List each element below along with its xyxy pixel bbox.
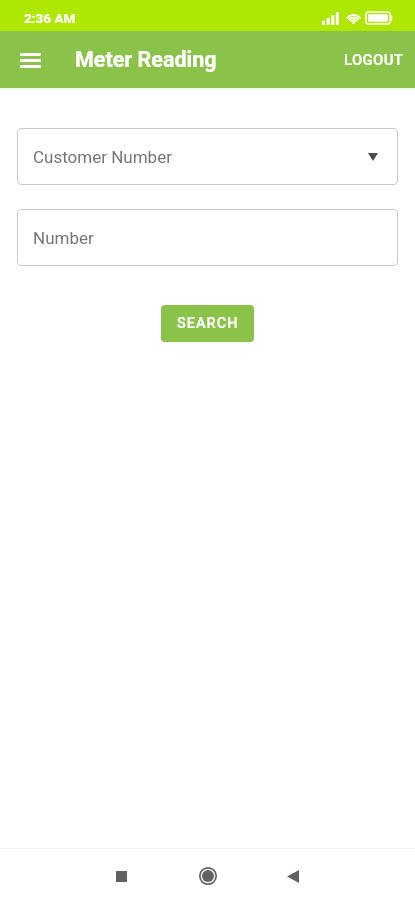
button[interactable]: Open navigation menu [10, 40, 50, 80]
staticText: 2:36 AM [24, 10, 76, 26]
button[interactable]: LOGOUT [329, 37, 415, 83]
button[interactable]: Home [188, 856, 228, 896]
staticText: Meter Reading [75, 47, 217, 72]
staticText: Number [33, 228, 94, 248]
button[interactable]: Customer Number [17, 128, 398, 185]
staticText: SEARCH [177, 315, 239, 332]
button[interactable]: Back [273, 856, 313, 896]
staticText: LOGOUT [344, 51, 404, 69]
staticText: Customer Number [33, 147, 172, 167]
button[interactable]: SEARCH [161, 305, 254, 342]
button[interactable]: Number [17, 209, 398, 266]
button[interactable]: Recent apps [101, 856, 141, 896]
